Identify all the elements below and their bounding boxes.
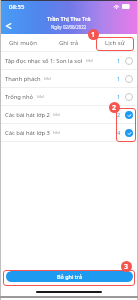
staticText: 3 xyxy=(124,262,129,272)
staticText: 1 xyxy=(117,57,121,65)
staticText: 1 xyxy=(117,93,121,101)
button[interactable]: Các bài hát lớp 2 xyxy=(0,106,138,123)
staticText: 2 xyxy=(112,103,117,113)
button[interactable]: Ghi muộn xyxy=(0,34,46,51)
staticText: Tập đọc nhạc số 1: Son la sol xyxy=(5,57,83,65)
button[interactable]: Tập đọc nhạc số 1: Son la sol xyxy=(0,52,138,69)
button[interactable]: Trống nhỏ xyxy=(0,88,138,105)
button[interactable]: Back xyxy=(1,19,15,33)
staticText: 08:55 xyxy=(9,3,25,11)
staticText: Ghi trả xyxy=(59,39,79,47)
staticText: Thanh phách xyxy=(5,75,41,83)
staticText: (đv) xyxy=(37,94,44,99)
button[interactable]: Ghi trả xyxy=(46,34,92,51)
button[interactable]: Thanh phách xyxy=(0,70,138,87)
staticText: Các bài hát lớp 3 xyxy=(5,129,50,137)
staticText: (đv) xyxy=(53,130,60,135)
staticText: (đv) xyxy=(53,112,60,117)
staticText: (đv) xyxy=(86,58,93,63)
staticText: Trần Thị Thu Trà xyxy=(47,15,91,23)
staticText: Bỏ ghi trả xyxy=(57,273,83,280)
staticText: 1 xyxy=(117,75,121,83)
staticText: Trống nhỏ xyxy=(5,93,34,101)
staticText: Lịch sử xyxy=(105,39,125,47)
button[interactable]: Bỏ ghi trả xyxy=(6,271,133,282)
button[interactable]: Các bài hát lớp 3 xyxy=(0,124,138,141)
staticText: 4 xyxy=(117,129,121,137)
staticText: 1 xyxy=(91,30,96,40)
button[interactable]: Lịch sử xyxy=(92,34,138,51)
staticText: Các bài hát lớp 2 xyxy=(5,111,50,119)
staticText: Ngày 02/06/2022 xyxy=(51,24,87,30)
staticText: (đv) xyxy=(44,76,51,81)
staticText: Ghi muộn xyxy=(9,39,37,47)
staticText: 2 xyxy=(117,111,121,119)
